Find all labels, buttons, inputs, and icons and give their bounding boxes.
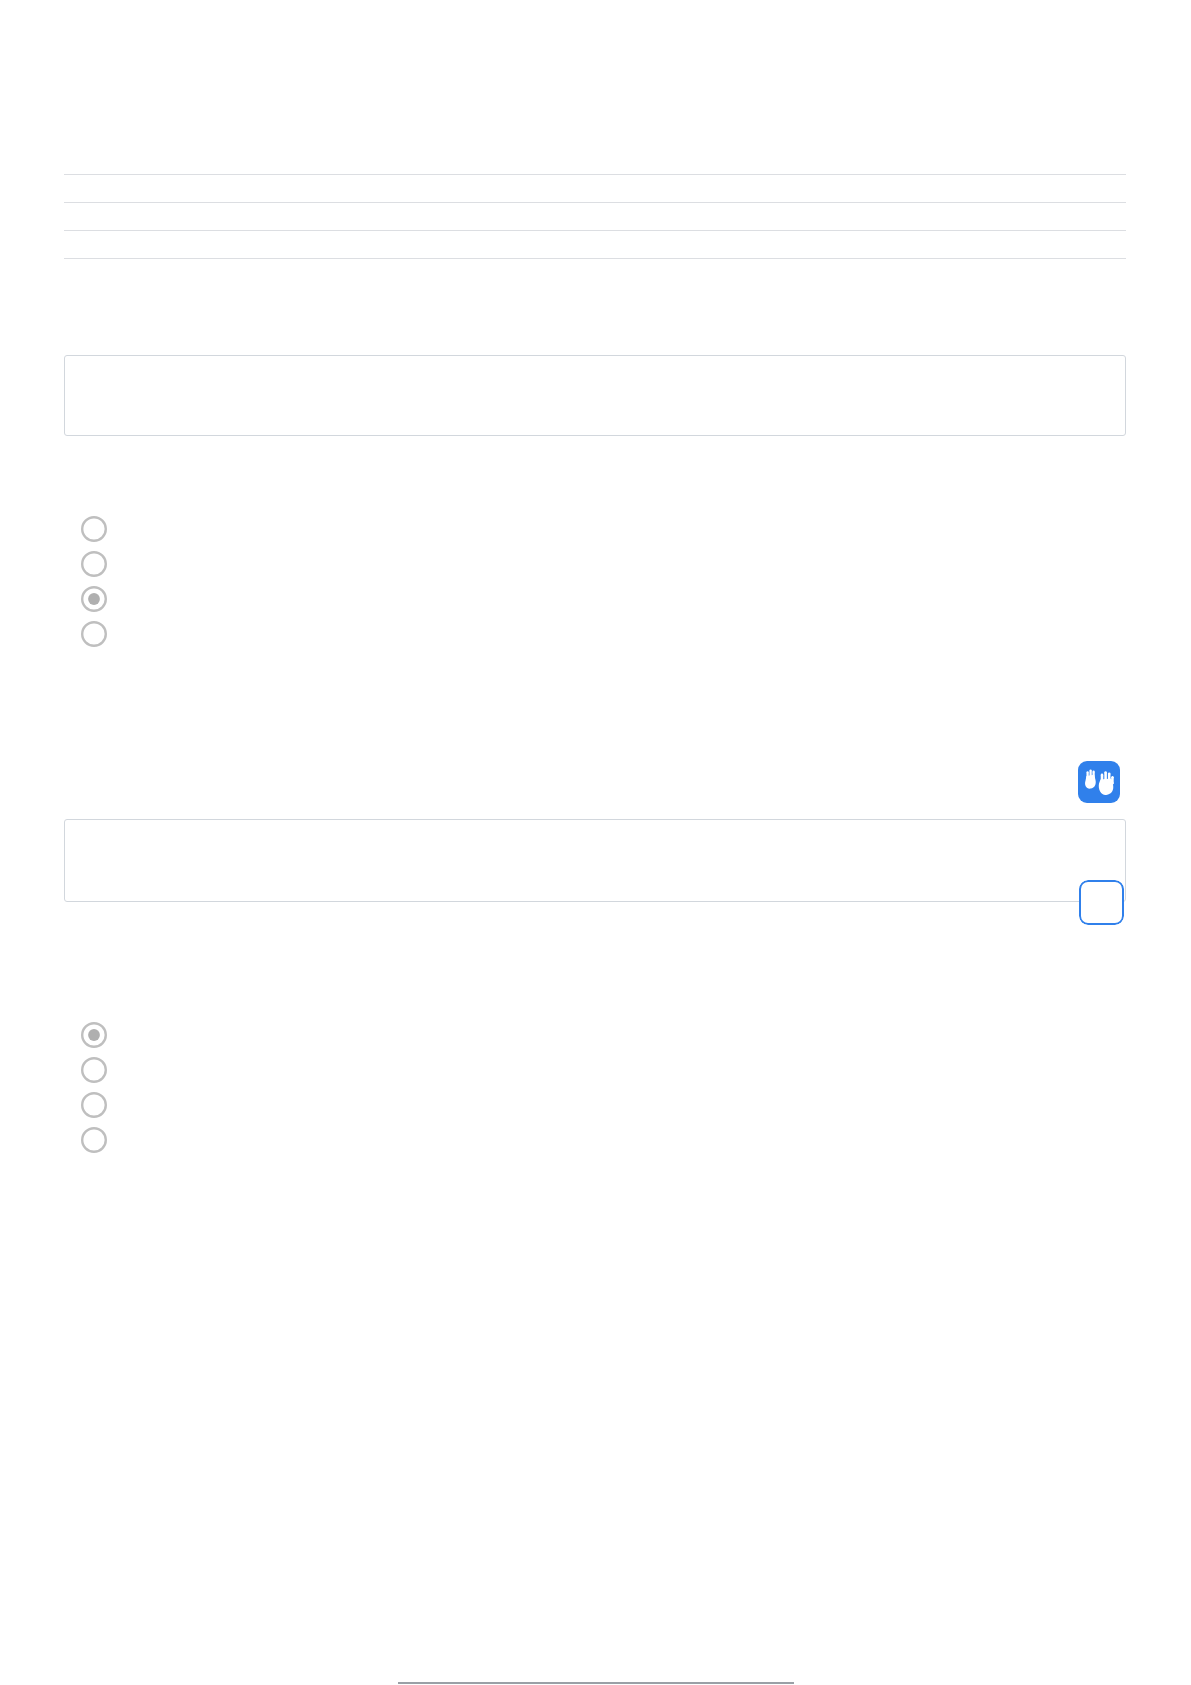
button[interactable]: [0, 511, 1191, 546]
button[interactable]: Sign language interpretation: [1078, 761, 1120, 803]
button[interactable]: [0, 1017, 1191, 1052]
button[interactable]: Open: [1079, 880, 1124, 925]
button[interactable]: [0, 1122, 1191, 1157]
button[interactable]: [0, 546, 1191, 581]
button[interactable]: [0, 1087, 1191, 1122]
button[interactable]: [0, 581, 1191, 616]
button[interactable]: [64, 355, 1126, 436]
button[interactable]: [0, 616, 1191, 651]
button[interactable]: [0, 1052, 1191, 1087]
button[interactable]: [64, 819, 1126, 902]
